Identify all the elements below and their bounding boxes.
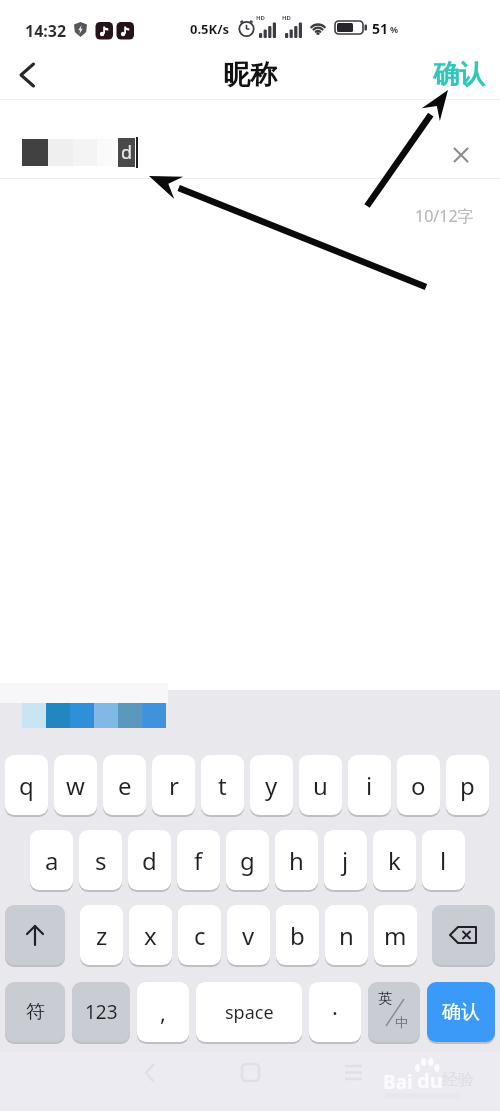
staticText: 昵称 <box>0 58 500 92</box>
button[interactable]: z <box>80 905 123 965</box>
staticText: Bai <box>383 1069 413 1095</box>
staticText: a <box>45 844 59 877</box>
button[interactable]: u <box>299 755 342 815</box>
staticText: j <box>342 844 349 877</box>
staticText: 确认 <box>433 58 485 91</box>
staticText: o <box>411 769 426 802</box>
staticText: , <box>160 997 166 1027</box>
button[interactable] <box>444 138 478 172</box>
staticText: n <box>339 919 354 952</box>
button[interactable]: 确认 <box>427 982 495 1042</box>
staticText: 中 <box>395 1014 408 1030</box>
button[interactable]: f <box>177 830 220 890</box>
staticText: q <box>19 769 34 802</box>
staticText: i <box>366 769 373 802</box>
button[interactable]: 123 <box>72 982 130 1042</box>
staticText: d <box>142 844 157 877</box>
staticText: 51 <box>372 19 389 38</box>
button[interactable]: p <box>446 755 489 815</box>
staticText: s <box>95 844 107 877</box>
button[interactable]: l <box>422 830 465 890</box>
button[interactable]: e <box>103 755 146 815</box>
button[interactable]: v <box>227 905 270 965</box>
button[interactable]: · <box>309 982 361 1042</box>
staticText: l <box>440 844 447 877</box>
button[interactable]: b <box>276 905 319 965</box>
staticText: · <box>332 997 338 1027</box>
staticText: v <box>242 919 255 952</box>
staticText: y <box>265 769 278 802</box>
staticText: u <box>313 769 328 802</box>
staticText: d <box>121 140 133 165</box>
button[interactable]: n <box>325 905 368 965</box>
staticText: e <box>118 769 132 802</box>
staticText: g <box>240 844 255 877</box>
button[interactable] <box>5 905 65 965</box>
staticText: z <box>96 919 108 952</box>
staticText: 14:32 <box>25 20 67 42</box>
staticText: m <box>384 919 407 952</box>
staticText: % <box>390 23 399 35</box>
button[interactable]: h <box>275 830 318 890</box>
button[interactable]: s <box>79 830 122 890</box>
button[interactable]: x <box>129 905 172 965</box>
staticText: r <box>169 769 179 802</box>
button[interactable]: q <box>5 755 48 815</box>
button[interactable]: 确认 <box>424 52 494 96</box>
staticText: du <box>417 1067 443 1094</box>
staticText: 123 <box>85 999 118 1025</box>
staticText: x <box>144 919 157 952</box>
staticText: 0.5K/s <box>190 20 230 38</box>
staticText: c <box>194 919 206 952</box>
button[interactable]: m <box>374 905 417 965</box>
button[interactable]: o <box>397 755 440 815</box>
button[interactable]: 英 <box>368 982 420 1042</box>
button[interactable]: i <box>348 755 391 815</box>
button[interactable]: k <box>373 830 416 890</box>
staticText: h <box>289 844 304 877</box>
button[interactable]: r <box>152 755 195 815</box>
staticText: k <box>388 844 401 877</box>
button[interactable] <box>432 905 495 965</box>
button[interactable]: , <box>137 982 189 1042</box>
staticText: f <box>194 844 203 877</box>
button[interactable]: c <box>178 905 221 965</box>
staticText: w <box>66 769 85 802</box>
button[interactable]: a <box>30 830 73 890</box>
button[interactable]: y <box>250 755 293 815</box>
button[interactable] <box>8 56 46 94</box>
staticText: b <box>290 919 305 952</box>
staticText: 符 <box>26 1000 45 1024</box>
staticText: 10/12字 <box>415 205 474 227</box>
button[interactable]: 符 <box>5 982 65 1042</box>
button[interactable]: g <box>226 830 269 890</box>
staticText: space <box>225 1000 274 1025</box>
staticText: t <box>218 769 227 802</box>
button[interactable]: space <box>196 982 302 1042</box>
staticText: HD <box>282 14 291 22</box>
staticText: 英 <box>378 990 392 1008</box>
button[interactable]: j <box>324 830 367 890</box>
button[interactable]: t <box>201 755 244 815</box>
staticText: 确认 <box>442 1000 480 1024</box>
button[interactable]: w <box>54 755 97 815</box>
staticText: p <box>460 769 475 802</box>
button[interactable]: d <box>128 830 171 890</box>
staticText: 经验 <box>442 1070 474 1090</box>
staticText: HD <box>256 14 265 22</box>
